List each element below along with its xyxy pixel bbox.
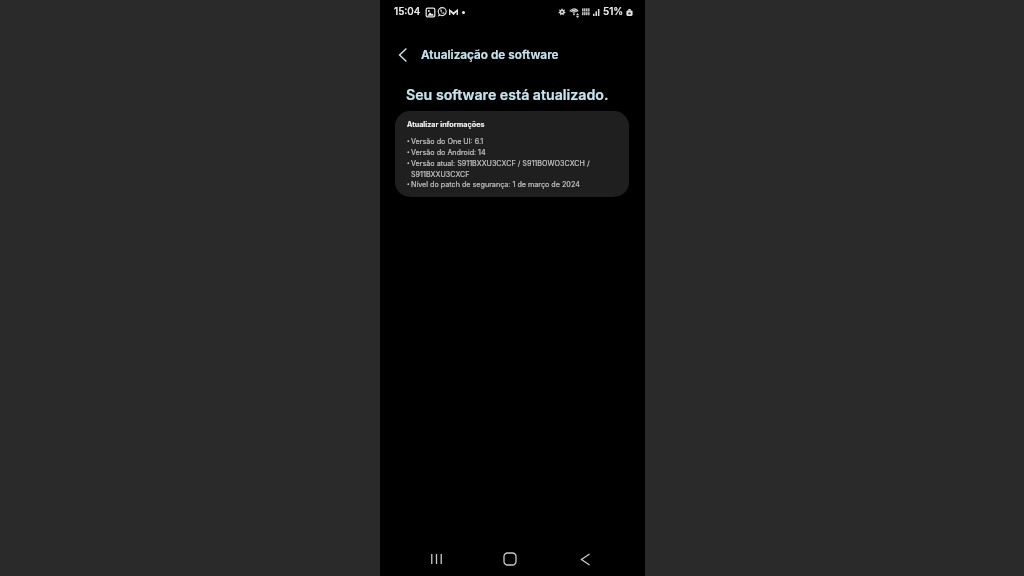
button[interactable]: Recent apps	[411, 547, 461, 571]
staticText: 51%	[603, 5, 624, 17]
button[interactable]: Home	[485, 547, 535, 571]
staticText: Seu software está atualizado.	[406, 86, 609, 103]
staticText: Versão atual: S911BXXU3CXCF / S911BOWO3C…	[411, 157, 603, 178]
staticText: Nível do patch de segurança: 1 de março …	[411, 178, 580, 189]
staticText: 15:04	[394, 5, 421, 17]
button[interactable]: Back	[560, 547, 610, 571]
button[interactable]: Back	[392, 44, 414, 66]
staticText: Versão do One UI: 6.1	[411, 135, 484, 146]
staticText: Atualizar informações	[407, 120, 485, 129]
staticText: Versão do Android: 14	[411, 146, 486, 157]
staticText: Atualização de software	[421, 48, 559, 62]
